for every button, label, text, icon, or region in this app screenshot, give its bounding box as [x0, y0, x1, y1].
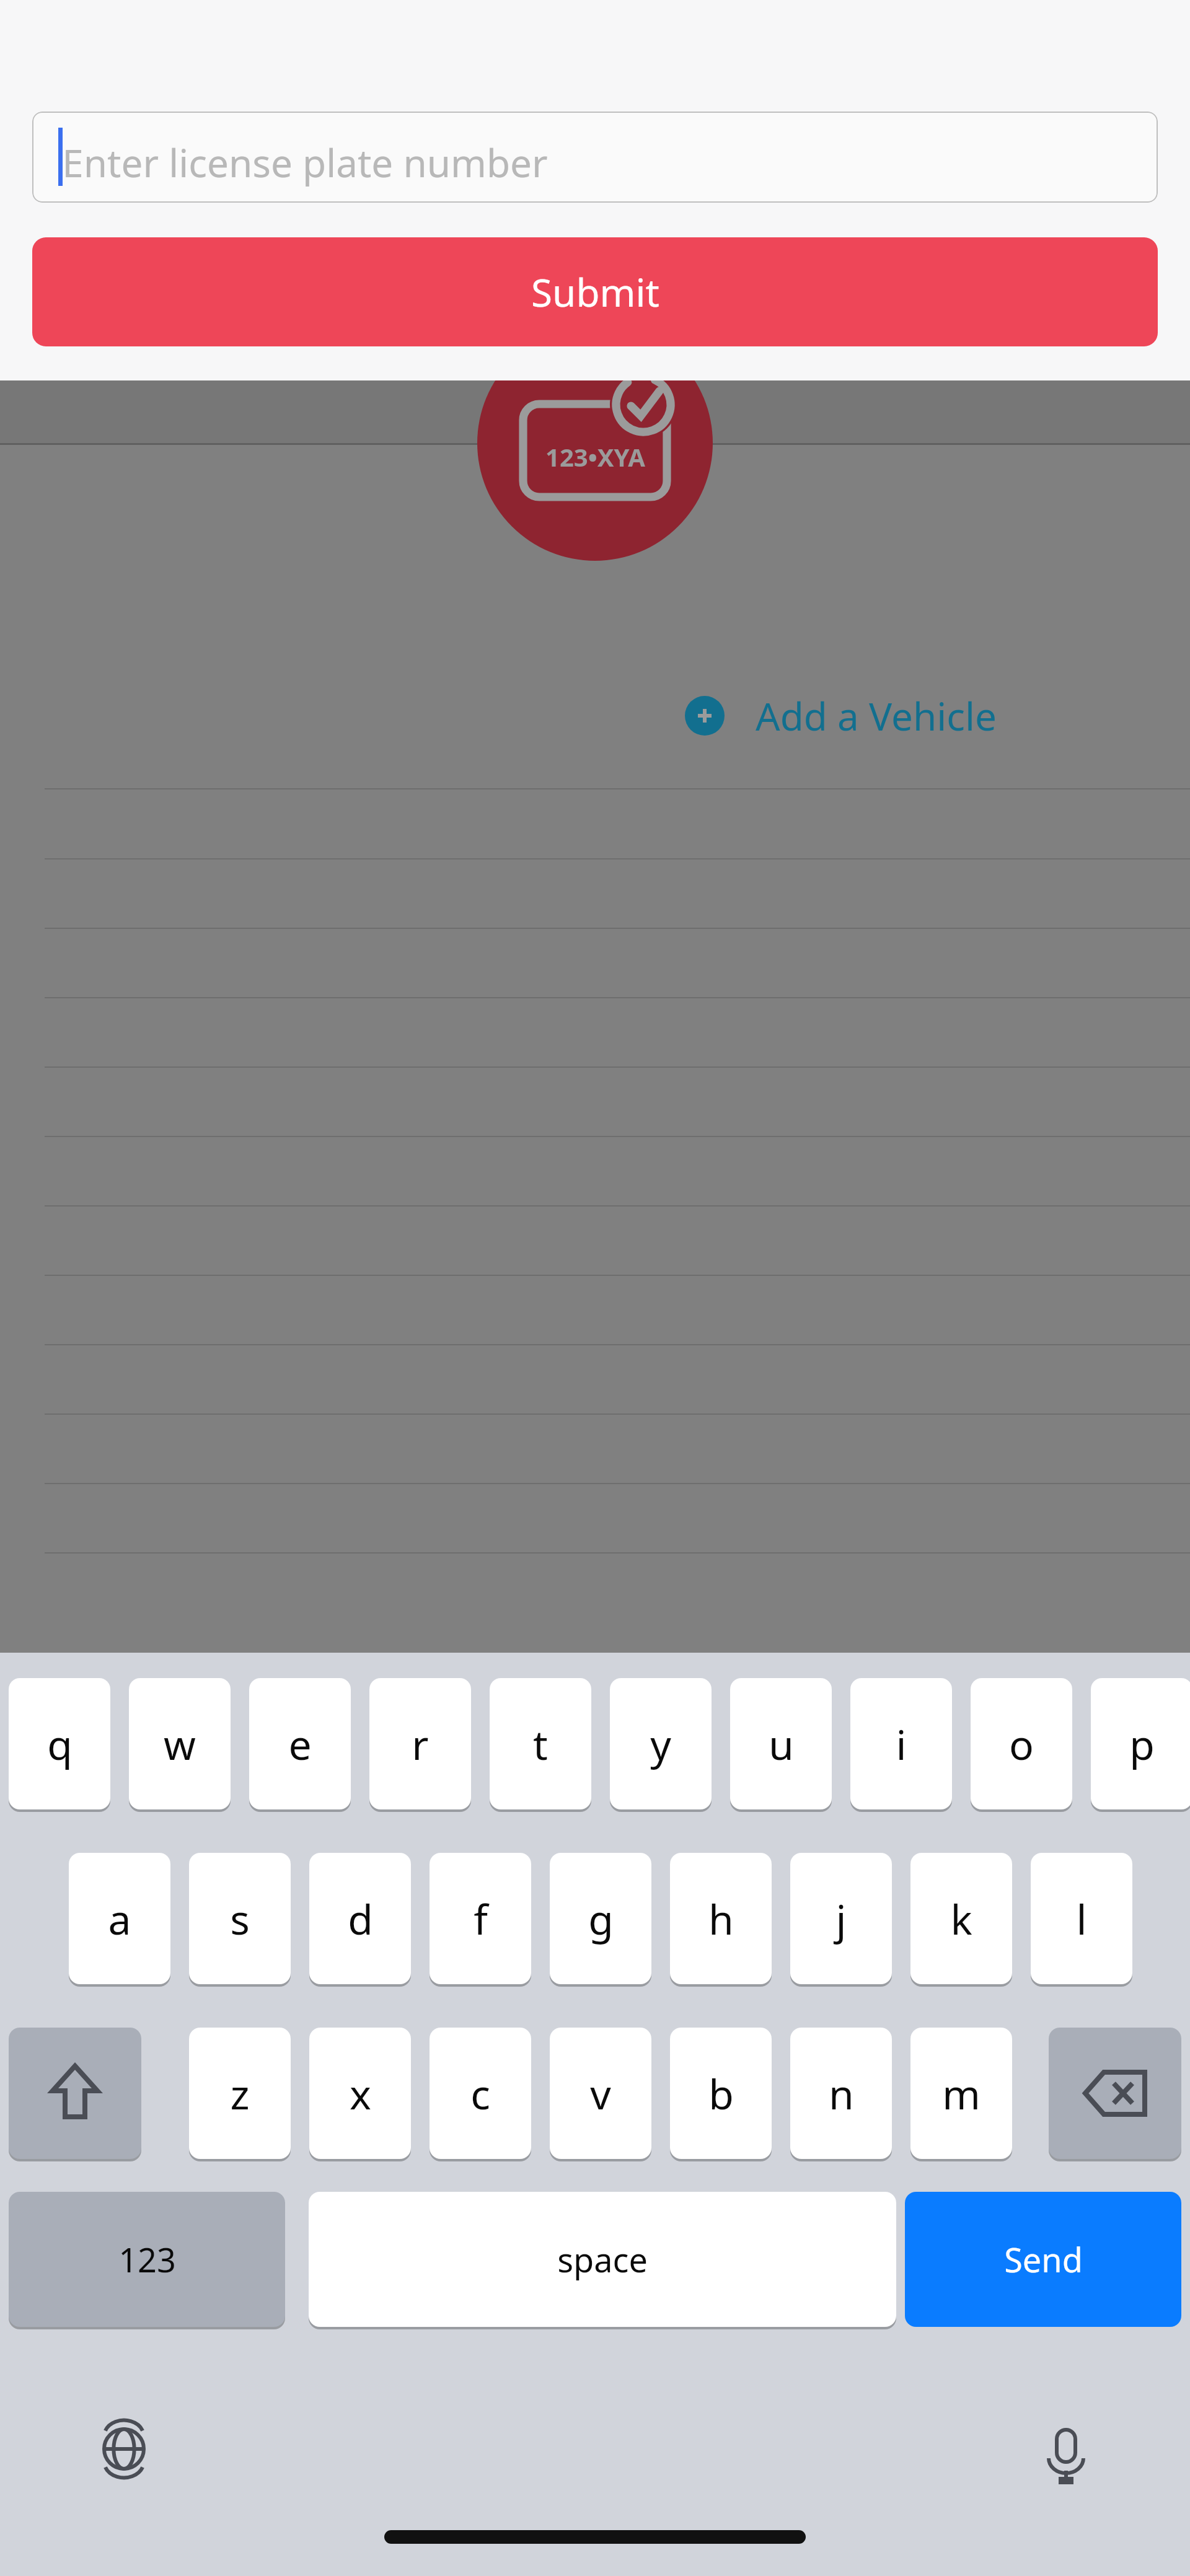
- button[interactable]: t: [490, 1678, 591, 1809]
- staticText: c: [470, 2065, 490, 2121]
- staticText: Enter license plate number: [62, 136, 548, 188]
- button[interactable]: w: [129, 1678, 231, 1809]
- button[interactable]: p: [1091, 1678, 1190, 1809]
- button[interactable]: Add a Vehicle: [685, 679, 997, 753]
- staticText: s: [230, 1891, 250, 1946]
- button[interactable]: q: [9, 1678, 110, 1809]
- button[interactable]: Shift: [9, 2028, 141, 2159]
- button[interactable]: h: [670, 1853, 772, 1984]
- staticText: w: [164, 1716, 196, 1772]
- staticText: k: [950, 1891, 972, 1946]
- staticText: Submit: [531, 266, 659, 318]
- staticText: l: [1076, 1891, 1087, 1946]
- button[interactable]: Enter license plate number: [32, 112, 1158, 203]
- staticText: x: [350, 2065, 371, 2121]
- button[interactable]: v: [550, 2028, 651, 2159]
- staticText: a: [108, 1891, 131, 1946]
- button[interactable]: u: [730, 1678, 832, 1809]
- button[interactable]: Backspace: [1049, 2028, 1181, 2159]
- staticText: m: [942, 2065, 981, 2121]
- button[interactable]: Submit: [32, 237, 1158, 346]
- button[interactable]: g: [550, 1853, 651, 1984]
- button[interactable]: e: [249, 1678, 351, 1809]
- staticText: r: [412, 1716, 429, 1772]
- staticText: u: [769, 1716, 794, 1772]
- button[interactable]: j: [790, 1853, 892, 1984]
- button[interactable]: c: [430, 2028, 531, 2159]
- button[interactable]: a: [69, 1853, 170, 1984]
- staticText: n: [829, 2065, 854, 2121]
- staticText: Send: [1004, 2236, 1083, 2282]
- staticText: g: [588, 1891, 614, 1946]
- staticText: 123•XYA: [545, 440, 645, 473]
- staticText: f: [474, 1891, 488, 1946]
- staticText: v: [590, 2065, 611, 2121]
- button[interactable]: f: [430, 1853, 531, 1984]
- button[interactable]: Send: [905, 2192, 1181, 2327]
- staticText: space: [557, 2236, 648, 2282]
- staticText: b: [708, 2065, 734, 2121]
- button[interactable]: k: [910, 1853, 1012, 1984]
- button[interactable]: i: [850, 1678, 952, 1809]
- button[interactable]: m: [910, 2028, 1012, 2159]
- button[interactable]: l: [1031, 1853, 1132, 1984]
- button[interactable]: z: [189, 2028, 291, 2159]
- staticText: 123: [118, 2236, 176, 2282]
- button[interactable]: s: [189, 1853, 291, 1984]
- button[interactable]: o: [971, 1678, 1072, 1809]
- button[interactable]: 123: [9, 2192, 285, 2327]
- button[interactable]: b: [670, 2028, 772, 2159]
- staticText: d: [348, 1891, 373, 1946]
- staticText: Add a Vehicle: [756, 690, 997, 742]
- button[interactable]: d: [309, 1853, 411, 1984]
- button[interactable]: space: [309, 2192, 896, 2327]
- staticText: i: [896, 1716, 907, 1772]
- button[interactable]: Dictate: [1023, 2406, 1109, 2492]
- button[interactable]: n: [790, 2028, 892, 2159]
- staticText: e: [288, 1716, 312, 1772]
- staticText: y: [650, 1716, 671, 1772]
- staticText: o: [1009, 1716, 1034, 1772]
- staticText: q: [47, 1716, 73, 1772]
- button[interactable]: x: [309, 2028, 411, 2159]
- staticText: z: [230, 2065, 250, 2121]
- staticText: t: [533, 1716, 548, 1772]
- staticText: p: [1129, 1716, 1155, 1772]
- button[interactable]: r: [369, 1678, 471, 1809]
- button[interactable]: y: [610, 1678, 712, 1809]
- button[interactable]: Change keyboard: [81, 2406, 167, 2492]
- staticText: h: [708, 1891, 734, 1946]
- staticText: j: [835, 1891, 847, 1946]
